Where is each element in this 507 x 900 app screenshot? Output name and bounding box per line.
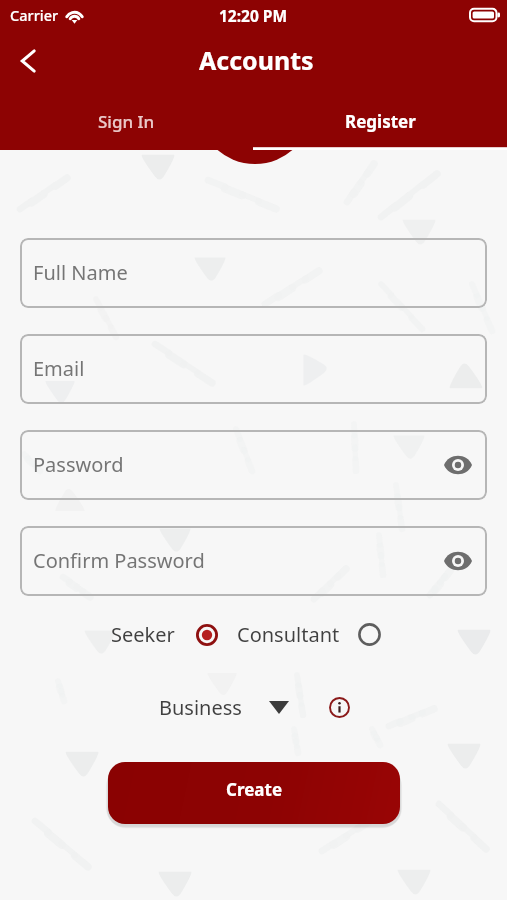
staticText: Business [159,694,242,721]
button[interactable]: Password [20,430,487,500]
staticText: Register [345,110,416,133]
button[interactable]: Show password [441,544,475,578]
button[interactable]: Confirm Password [20,526,487,596]
staticText: Password [33,451,124,478]
button[interactable]: Register [253,92,507,150]
staticText: Sign In [98,110,155,133]
staticText: Carrier [10,5,59,25]
staticText: Full Name [33,259,128,286]
button[interactable]: Consultant [237,621,381,648]
staticText: Confirm Password [33,547,205,574]
staticText: Create [226,778,283,801]
button[interactable]: Back [5,38,51,84]
button[interactable]: Show password [441,448,475,482]
button[interactable]: Email [20,334,487,404]
staticText: Seeker [111,621,175,648]
button[interactable]: Full Name [20,238,487,308]
staticText: 12:20 PM [219,5,288,26]
button[interactable]: Create [108,762,400,824]
staticText: Consultant [237,621,340,648]
staticText: Email [33,355,85,382]
button[interactable]: Seeker [111,621,218,648]
button[interactable]: Sign In [0,92,253,150]
staticText: Accounts [199,43,314,77]
button[interactable]: Business [159,694,289,721]
button[interactable]: Info [325,693,353,721]
